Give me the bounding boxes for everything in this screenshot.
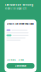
button[interactable]: Commencer xyxy=(6,63,34,69)
staticText: Décris ton week-end idéal xyxy=(7,22,34,25)
staticText: Améliore ton anglais écrit xyxy=(4,7,26,10)
staticText: +12 mots · 2 min xyxy=(6,59,23,61)
staticText: Commencer xyxy=(14,64,26,67)
staticText: Exercices de Writing xyxy=(4,3,33,6)
